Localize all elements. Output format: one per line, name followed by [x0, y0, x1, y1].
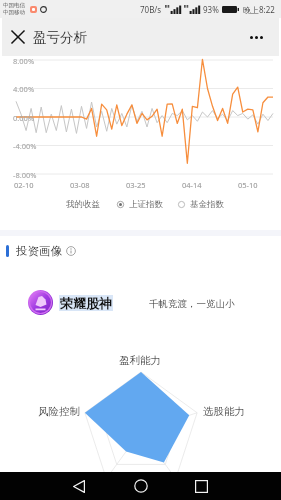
staticText: 盈亏分析	[33, 29, 87, 46]
button[interactable]: Home	[127, 472, 155, 500]
button[interactable]: Back	[65, 472, 93, 500]
staticText: 基金指数	[190, 199, 224, 210]
button[interactable]: Info	[66, 246, 76, 256]
staticText: 4.00%	[13, 84, 35, 94]
staticText: -4.00%	[13, 141, 37, 151]
staticText: 93%	[203, 4, 219, 15]
staticText: 中国电信	[3, 2, 25, 9]
staticText: 03-25	[126, 180, 146, 190]
staticText: 02-10	[14, 180, 34, 190]
staticText: 我的收益	[66, 199, 100, 210]
staticText: 盈利能力	[119, 354, 161, 367]
staticText: 千帆竞渡，一览山小	[149, 298, 235, 310]
button[interactable]: More options	[242, 23, 270, 51]
staticText: 风险控制	[38, 405, 80, 418]
staticText: 8.00%	[13, 56, 35, 66]
staticText: 投资画像	[16, 244, 62, 258]
staticText: 中国移动	[3, 9, 25, 16]
button[interactable]: 基金指数	[178, 193, 224, 215]
button[interactable]: Recents	[187, 472, 215, 500]
staticText: 0.00%	[13, 113, 35, 123]
staticText: 荣耀股神	[60, 295, 112, 311]
staticText: 05-10	[238, 180, 258, 190]
staticText: 04-14	[182, 180, 202, 190]
button[interactable]: 上证指数	[117, 193, 163, 215]
staticText: 晚上8:22	[243, 4, 275, 15]
staticText: 03-08	[70, 180, 90, 190]
staticText: -8.00%	[13, 170, 37, 180]
button[interactable]: 我的收益	[66, 193, 100, 215]
button[interactable]: Close	[6, 25, 30, 49]
staticText: 选股能力	[203, 405, 245, 418]
staticText: 上证指数	[129, 199, 163, 210]
staticText: 70B/s	[140, 4, 162, 15]
